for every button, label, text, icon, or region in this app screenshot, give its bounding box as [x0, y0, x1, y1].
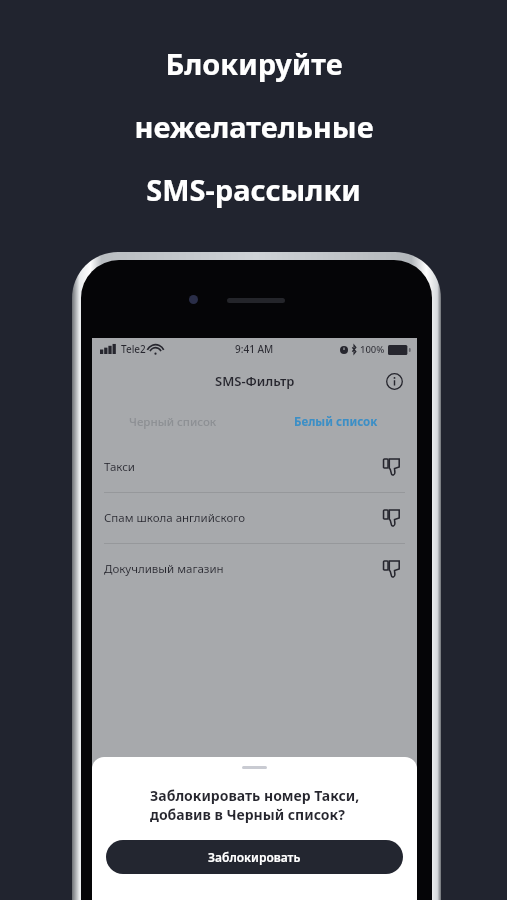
- staticText: Спам школа английского: [104, 510, 245, 526]
- button[interactable]: Заблокировать: [106, 840, 403, 874]
- staticText: Докучливый магазин: [104, 561, 224, 577]
- button[interactable]: Заблокировать: [379, 556, 405, 582]
- button[interactable]: Информация: [381, 368, 407, 394]
- staticText: 9:41 AM: [235, 342, 274, 356]
- button[interactable]: Такси: [92, 442, 417, 492]
- button[interactable]: Заблокировать: [379, 454, 405, 480]
- staticText: Черный список: [129, 414, 217, 430]
- button[interactable]: Заблокировать: [379, 505, 405, 531]
- staticText: Белый список: [294, 414, 378, 430]
- staticText: Такси: [104, 459, 136, 475]
- staticText: добавив в Черный список?: [150, 805, 345, 824]
- button[interactable]: Докучливый магазин: [92, 544, 417, 594]
- staticText: нежелательные: [134, 107, 374, 146]
- button[interactable]: Белый список: [254, 402, 417, 442]
- staticText: SMS-Фильтр: [215, 372, 295, 390]
- button[interactable]: Черный список: [92, 402, 254, 442]
- staticText: 100%: [360, 343, 385, 356]
- button[interactable]: Спам школа английского: [92, 493, 417, 543]
- staticText: Tele2: [121, 342, 146, 356]
- staticText: Блокируйте: [165, 44, 343, 83]
- staticText: Заблокировать: [208, 849, 301, 865]
- staticText: Заблокировать номер Такси,: [150, 786, 360, 805]
- staticText: SMS-рассылки: [146, 170, 361, 209]
